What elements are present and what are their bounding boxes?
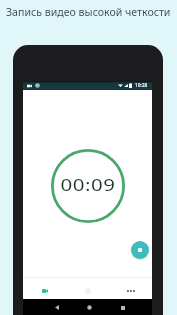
button[interactable]: Recent apps bbox=[106, 299, 139, 315]
button[interactable]: Video camera bbox=[23, 283, 66, 299]
staticText: 00:09 bbox=[43, 173, 133, 223]
button[interactable]: Back bbox=[41, 299, 73, 315]
staticText: 10:28 bbox=[135, 82, 148, 89]
button[interactable]: Home bbox=[73, 299, 106, 315]
button[interactable]: More options bbox=[109, 283, 152, 299]
staticText: Запись видео высокой четкости bbox=[6, 5, 177, 19]
button[interactable]: Stop recording bbox=[131, 241, 149, 259]
